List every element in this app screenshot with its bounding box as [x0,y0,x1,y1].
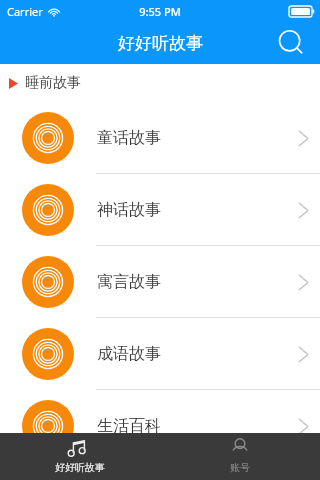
button[interactable]: 好好听故事 [0,433,160,474]
staticText: 神话故事 [97,200,161,220]
staticText: 寓言故事 [97,272,161,292]
staticText: 童话故事 [97,128,161,148]
button[interactable]: 童话故事 [0,102,320,174]
button[interactable]: 神话故事 [0,174,320,246]
staticText: 好好听故事 [55,461,105,474]
button[interactable]: Search [275,27,307,59]
button[interactable]: 账号 [160,433,320,474]
staticText: 账号 [230,461,250,474]
staticText: 好好听故事 [118,33,203,54]
button[interactable]: 唐诗宋词 [0,462,320,480]
button[interactable]: 生活百科 [0,390,320,462]
staticText: 成语故事 [97,344,161,364]
staticText: 唐诗宋词 [97,462,161,480]
staticText: Carrier [7,4,43,19]
button[interactable]: 寓言故事 [0,246,320,318]
button[interactable]: 成语故事 [0,318,320,390]
staticText: 睡前故事 [25,74,81,92]
staticText: 生活百科 [97,416,161,436]
staticText: 9:55 PM [139,4,181,19]
